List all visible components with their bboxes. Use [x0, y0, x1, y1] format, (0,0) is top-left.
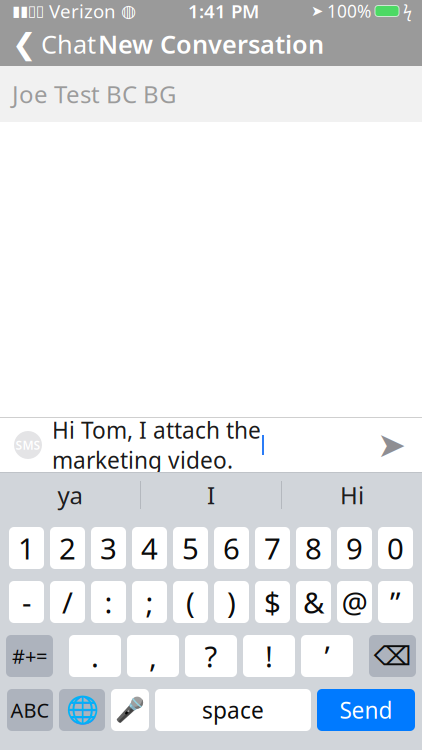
staticText: #+=	[12, 643, 47, 669]
staticText: ?	[204, 636, 217, 675]
staticText: space	[202, 695, 264, 725]
button[interactable]: ❮	[0, 21, 96, 67]
staticText: @	[341, 582, 367, 621]
button[interactable]: 9	[337, 527, 372, 569]
button[interactable]: :	[91, 581, 126, 623]
staticText: Verizon	[49, 0, 116, 23]
staticText: 6	[223, 528, 240, 567]
staticText: 🌐	[65, 695, 98, 725]
staticText: 0	[387, 528, 404, 567]
staticText: SMS	[15, 437, 40, 453]
staticText: ⌫	[373, 641, 411, 671]
button[interactable]: /	[50, 581, 85, 623]
button[interactable]: 2	[50, 527, 85, 569]
button[interactable]: ’	[301, 635, 353, 677]
button[interactable]: Hi	[282, 473, 422, 517]
button[interactable]: 1	[9, 527, 44, 569]
staticText: Hi	[340, 479, 364, 511]
button[interactable]: 0	[378, 527, 413, 569]
button[interactable]: 5	[173, 527, 208, 569]
button[interactable]: 3	[91, 527, 126, 569]
staticText: I	[207, 479, 215, 511]
button[interactable]: Send	[317, 689, 415, 731]
button[interactable]: 7	[255, 527, 290, 569]
button[interactable]: ”	[378, 581, 413, 623]
button[interactable]: .	[69, 635, 121, 677]
staticText: Send	[339, 695, 392, 725]
staticText: ”	[390, 582, 401, 621]
staticText: Joe Test BC BG	[12, 78, 176, 110]
staticText: ABC	[10, 697, 49, 723]
button[interactable]: Delete	[369, 635, 416, 677]
button[interactable]: @	[337, 581, 372, 623]
staticText: 7	[264, 528, 281, 567]
staticText: ◍	[121, 1, 136, 21]
staticText: -	[22, 582, 31, 621]
staticText: ➤	[377, 425, 406, 465]
staticText: 1:41 PM	[188, 0, 259, 23]
button[interactable]: $	[255, 581, 290, 623]
staticText: !	[265, 636, 273, 675]
button[interactable]: !	[243, 635, 295, 677]
staticText: Chat	[41, 27, 96, 61]
button[interactable]: Dictation	[111, 689, 149, 731]
staticText: 9	[346, 528, 363, 567]
button[interactable]: 8	[296, 527, 331, 569]
button[interactable]: -	[9, 581, 44, 623]
button[interactable]: #+=	[6, 635, 53, 677]
button[interactable]: ?	[185, 635, 237, 677]
staticText: 1	[18, 528, 35, 567]
staticText: ▮▮▯▯	[12, 3, 44, 19]
staticText: 4	[141, 528, 158, 567]
staticText: /	[62, 582, 73, 621]
button[interactable]: ya	[0, 473, 140, 517]
staticText: $	[264, 582, 281, 621]
staticText: 2	[59, 528, 76, 567]
staticText: ❮	[12, 27, 37, 61]
staticText: 8	[305, 528, 322, 567]
staticText: ’	[324, 636, 329, 675]
button[interactable]: &	[296, 581, 331, 623]
button[interactable]: 6	[214, 527, 249, 569]
staticText: ϟ	[403, 0, 412, 22]
staticText: &	[303, 582, 324, 621]
staticText: ;	[145, 582, 153, 621]
staticText: (	[186, 582, 195, 621]
staticText: 🎤	[115, 696, 145, 724]
staticText: New Conversation	[98, 27, 324, 61]
staticText: 3	[100, 528, 117, 567]
button[interactable]: I	[141, 473, 281, 517]
staticText: .	[91, 636, 99, 675]
button[interactable]: Send	[377, 417, 422, 473]
staticText: ➤	[311, 3, 323, 19]
staticText: ,	[149, 636, 157, 675]
staticText: Hi Tom, I attach the marketing video.	[52, 415, 261, 475]
button[interactable]: Next keyboard	[59, 689, 105, 731]
button[interactable]: ABC	[7, 689, 53, 731]
button[interactable]: ;	[132, 581, 167, 623]
button[interactable]: 4	[132, 527, 167, 569]
staticText: ya	[57, 479, 82, 511]
staticText: :	[104, 582, 112, 621]
button[interactable]: ,	[127, 635, 179, 677]
button[interactable]: (	[173, 581, 208, 623]
button[interactable]: )	[214, 581, 249, 623]
staticText: 5	[182, 528, 199, 567]
button[interactable]: space	[155, 689, 311, 731]
staticText: 100%	[327, 0, 371, 22]
staticText: )	[227, 582, 236, 621]
